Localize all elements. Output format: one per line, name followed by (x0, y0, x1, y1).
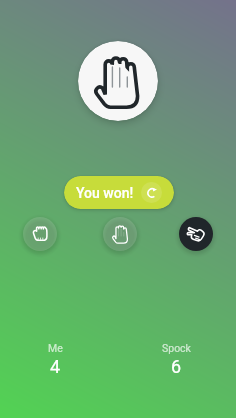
staticText: Me (48, 342, 63, 354)
staticText: You won! (76, 185, 134, 201)
staticText: 6 (171, 356, 182, 377)
button[interactable]: Your move: paper (78, 41, 158, 121)
button[interactable]: Choose paper (103, 217, 137, 251)
staticText: 4 (50, 356, 61, 377)
button[interactable]: Choose scissors (179, 217, 213, 251)
button[interactable]: Choose rock (23, 217, 57, 251)
button[interactable]: You won! (64, 176, 174, 209)
staticText: Spock (162, 342, 191, 354)
